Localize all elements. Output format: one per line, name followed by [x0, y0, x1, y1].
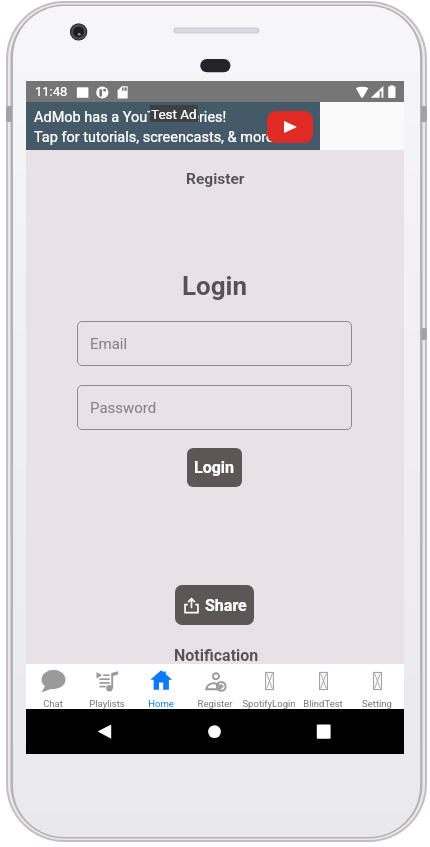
staticText: Share [205, 596, 247, 615]
button[interactable]: Email [77, 321, 352, 366]
button[interactable]: AdMob has a YouTube Series! [26, 102, 320, 150]
button[interactable]: Playlists [80, 664, 134, 709]
staticText: Home [134, 698, 188, 709]
staticText: Notification [174, 646, 259, 665]
staticText: Test Ad [151, 106, 197, 122]
staticText: AdMob has a YouTube Series! [34, 109, 227, 126]
button[interactable]: Setting [350, 664, 404, 709]
staticText: BlindTest [296, 698, 350, 709]
staticText: Email [90, 335, 128, 353]
staticText: Login [182, 271, 248, 301]
button[interactable]: Password [77, 385, 352, 430]
staticText: Playlists [80, 698, 134, 709]
staticText: Login [194, 458, 235, 477]
button[interactable]: Back [82, 716, 113, 747]
button[interactable]: Share [175, 585, 254, 625]
button[interactable]: Home [199, 716, 230, 747]
staticText: Setting [350, 698, 404, 709]
button[interactable]: YouTube [267, 111, 313, 143]
button[interactable]: Register [171, 168, 259, 190]
button[interactable]: Chat [26, 664, 80, 709]
staticText: SpotifyLogin [242, 698, 296, 709]
staticText: Tap for tutorials, screencasts, & more. [34, 129, 278, 146]
button[interactable]: Register [188, 664, 242, 709]
staticText: Register [188, 698, 242, 709]
button[interactable]: Recent apps [318, 716, 349, 747]
button[interactable]: Home [134, 664, 188, 709]
button[interactable]: SpotifyLogin [242, 664, 296, 709]
button[interactable]: Login [187, 448, 242, 487]
staticText: Password [90, 399, 157, 417]
staticText: Register [186, 170, 245, 188]
staticText: 11:48 [35, 84, 68, 99]
staticText: Chat [26, 698, 80, 709]
button[interactable]: BlindTest [296, 664, 350, 709]
